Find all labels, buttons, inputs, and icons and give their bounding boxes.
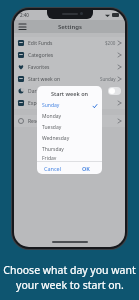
staticText: your week to start on. (16, 278, 124, 292)
button[interactable]: Menu (17, 22, 27, 32)
staticText: Wednesday (42, 135, 70, 142)
staticText: Choose what day you want (3, 263, 136, 277)
button[interactable]: Wednesday (37, 133, 102, 144)
staticText: Cancel (44, 165, 62, 172)
staticText: Start week on (51, 90, 89, 97)
staticText: Export (28, 100, 44, 107)
button[interactable]: Thursday (37, 144, 102, 155)
staticText: Tuesday (42, 124, 62, 131)
staticText: 2:40 (20, 12, 29, 18)
staticText: Sunday (100, 76, 116, 82)
button[interactable]: Edit Funds (14, 37, 125, 49)
staticText: Favorites (28, 64, 50, 71)
staticText: $200 (105, 40, 116, 46)
staticText: Categories (28, 52, 54, 59)
staticText: Settings (58, 23, 82, 31)
button[interactable]: Favorites (14, 61, 125, 73)
staticText: OK (82, 165, 90, 172)
staticText: Dark mode (28, 88, 55, 95)
button[interactable]: Tuesday (37, 122, 102, 133)
staticText: Reset (28, 118, 41, 125)
button[interactable]: Start week on (14, 73, 125, 85)
button[interactable]: Categories (14, 49, 125, 61)
button[interactable]: Monday (37, 111, 102, 122)
button[interactable]: Cancel (37, 162, 69, 174)
button[interactable]: Reset (14, 115, 125, 127)
staticText: Monday (42, 113, 62, 120)
staticText: Sunday (42, 102, 60, 109)
button[interactable]: Export (14, 97, 125, 109)
staticText: Friday (42, 155, 57, 160)
button[interactable]: OK (69, 162, 102, 174)
staticText: Edit Funds (28, 40, 53, 47)
staticText: Start week on (28, 76, 61, 83)
staticText: Thursday (42, 146, 64, 153)
button[interactable]: Sunday (37, 100, 102, 111)
button[interactable]: Dark mode (14, 85, 125, 97)
